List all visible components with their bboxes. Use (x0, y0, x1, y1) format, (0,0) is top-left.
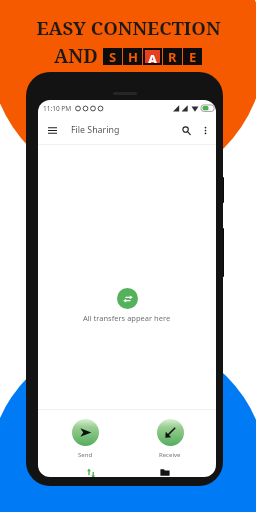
staticText: S (109, 48, 117, 65)
button[interactable]: Send (57, 410, 113, 460)
staticText: All transfers appear here (83, 313, 171, 323)
button[interactable]: Transfers (38, 460, 127, 477)
staticText: Receive (159, 451, 181, 459)
staticText: File Sharing (71, 124, 120, 136)
staticText: Send (78, 451, 93, 459)
button[interactable]: More options (199, 124, 212, 137)
staticText: H (128, 48, 138, 65)
button[interactable]: Menu (45, 123, 60, 138)
staticText: R (168, 48, 177, 65)
staticText: AND (54, 43, 98, 69)
button[interactable]: Files (127, 460, 216, 477)
staticText: EASY CONNECTION (36, 15, 221, 40)
staticText: 11:10 PM (43, 104, 72, 113)
button[interactable]: Receive (142, 410, 198, 460)
staticText: A (148, 50, 157, 63)
staticText: E (189, 48, 197, 65)
button[interactable]: Search (179, 123, 194, 138)
